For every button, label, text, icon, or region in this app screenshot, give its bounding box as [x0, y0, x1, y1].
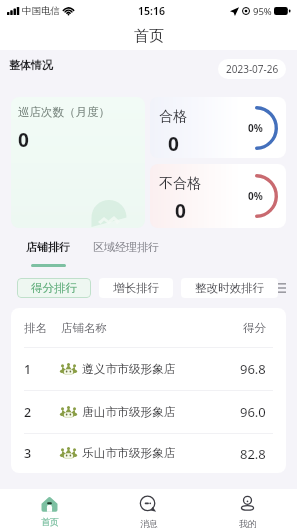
button[interactable]: More filters	[278, 279, 286, 297]
button[interactable]: 整改时效排行	[181, 278, 278, 298]
staticText: 我的	[239, 518, 257, 528]
staticText: 区域经理排行	[93, 240, 159, 254]
staticText: 95%	[253, 5, 272, 18]
staticText: 店铺名称	[61, 321, 107, 335]
staticText: 乐山市市级形象店	[82, 446, 176, 461]
button[interactable]: 巡店次数（月度）	[11, 97, 145, 228]
staticText: 1	[24, 361, 61, 378]
staticText: 2023-07-26	[226, 62, 279, 76]
button[interactable]: 不合格	[150, 164, 286, 228]
button[interactable]: 1	[11, 348, 286, 390]
staticText: 得分排行	[31, 281, 77, 295]
button[interactable]: 2	[11, 391, 286, 433]
button[interactable]: 店铺排行	[26, 240, 70, 267]
staticText: 0	[18, 127, 29, 153]
staticText: 整体情况	[9, 58, 53, 72]
button[interactable]: 消息	[99, 489, 198, 528]
staticText: 首页	[134, 27, 164, 46]
button[interactable]: 得分排行	[17, 278, 91, 298]
staticText: 店铺排行	[26, 240, 70, 254]
staticText: 不合格	[159, 175, 201, 193]
staticText: 2	[24, 404, 61, 421]
staticText: 3	[24, 445, 61, 462]
button[interactable]: 增长排行	[99, 278, 173, 298]
button[interactable]: 合格	[150, 97, 286, 158]
staticText: 首页	[41, 516, 59, 527]
staticText: 唐山市市级形象店	[82, 405, 176, 420]
button[interactable]: 首页	[0, 489, 99, 528]
staticText: 15:16	[138, 4, 165, 18]
staticText: 96.8	[240, 360, 266, 378]
button[interactable]: 区域经理排行	[93, 240, 159, 267]
staticText: 合格	[159, 108, 187, 126]
staticText: 0%	[248, 121, 263, 135]
staticText: 整改时效排行	[195, 281, 264, 295]
staticText: 得分	[243, 321, 266, 335]
staticText: 中国电信	[22, 5, 60, 17]
staticText: 遵义市市级形象店	[82, 362, 176, 377]
staticText: 增长排行	[113, 281, 159, 295]
button[interactable]: 3	[11, 434, 286, 473]
staticText: 排名	[24, 321, 61, 335]
staticText: 0	[168, 131, 179, 157]
staticText: 96.0	[240, 403, 266, 421]
staticText: 巡店次数（月度）	[18, 105, 110, 119]
staticText: 0%	[248, 189, 263, 203]
button[interactable]: 2023-07-26	[218, 59, 286, 79]
staticText: 82.8	[240, 445, 266, 463]
staticText: 0	[175, 198, 186, 224]
button[interactable]: 我的	[198, 489, 297, 528]
staticText: 消息	[140, 518, 158, 528]
